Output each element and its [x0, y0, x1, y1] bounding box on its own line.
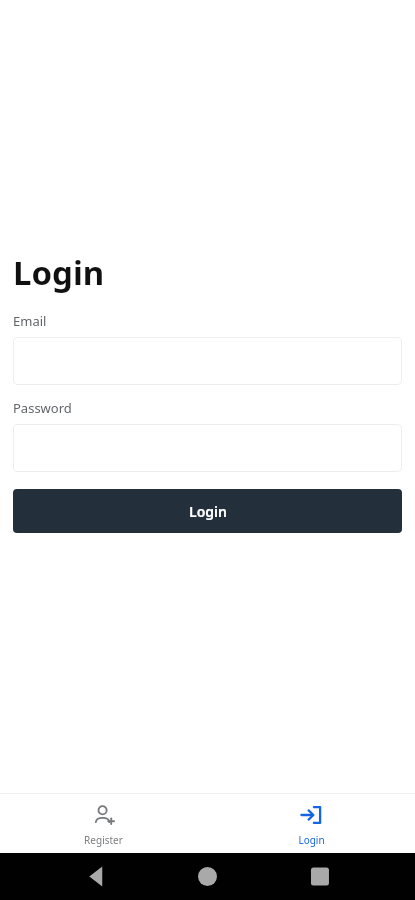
- button[interactable]: Register: [0, 794, 207, 853]
- other: Register: [92, 803, 116, 827]
- staticText: Password: [13, 399, 72, 417]
- staticText: Login: [298, 833, 325, 847]
- button[interactable]: Login: [13, 489, 402, 533]
- button[interactable]: [13, 424, 402, 472]
- staticText: Email: [13, 312, 47, 330]
- button[interactable]: [13, 337, 402, 385]
- other: Login: [299, 803, 323, 827]
- staticText: Register: [84, 833, 123, 847]
- staticText: Login: [13, 250, 105, 295]
- button[interactable]: Login: [207, 794, 415, 853]
- staticText: Login: [189, 502, 227, 521]
